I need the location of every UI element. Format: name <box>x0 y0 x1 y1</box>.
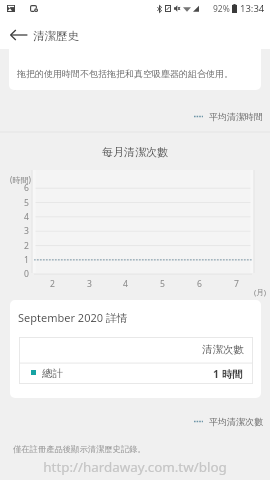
button[interactable]: Back <box>7 23 31 47</box>
staticText: 3 <box>87 278 92 290</box>
staticText: (月) <box>254 287 267 297</box>
staticText: 13:34 <box>240 2 265 15</box>
staticText: 92% <box>213 3 230 15</box>
staticText: 1 <box>24 254 29 266</box>
staticText: 4 <box>24 211 29 223</box>
staticText: 7 <box>234 278 239 290</box>
staticText: 拖把的使用時間不包括拖把和真空吸塵器的組合使用。 <box>17 68 233 79</box>
staticText: 2 <box>50 278 55 290</box>
staticText: 5 <box>24 197 29 209</box>
staticText: 3 <box>24 225 29 237</box>
staticText: 總計 <box>42 367 63 380</box>
staticText: 平均清潔時間 <box>209 111 263 122</box>
staticText: 4 <box>123 278 128 290</box>
staticText: 5 <box>160 278 165 290</box>
staticText: 清潔次數 <box>202 343 244 356</box>
staticText: 1 時間 <box>213 367 243 381</box>
staticText: 平均清潔次數 <box>209 416 263 427</box>
staticText: 清潔歷史 <box>33 29 79 43</box>
staticText: 僅在註冊產品後顯示清潔歷史記錄。 <box>13 444 146 454</box>
staticText: http://hardaway.com.tw/blog <box>0 458 270 476</box>
staticText: 每月清潔次數 <box>0 145 270 159</box>
staticText: (時間) <box>10 174 31 185</box>
staticText: 6 <box>197 278 202 290</box>
staticText: 0 <box>24 268 29 280</box>
staticText: 2 <box>24 240 29 252</box>
staticText: September 2020 詳情 <box>18 310 128 325</box>
staticText: 6 <box>24 182 29 194</box>
